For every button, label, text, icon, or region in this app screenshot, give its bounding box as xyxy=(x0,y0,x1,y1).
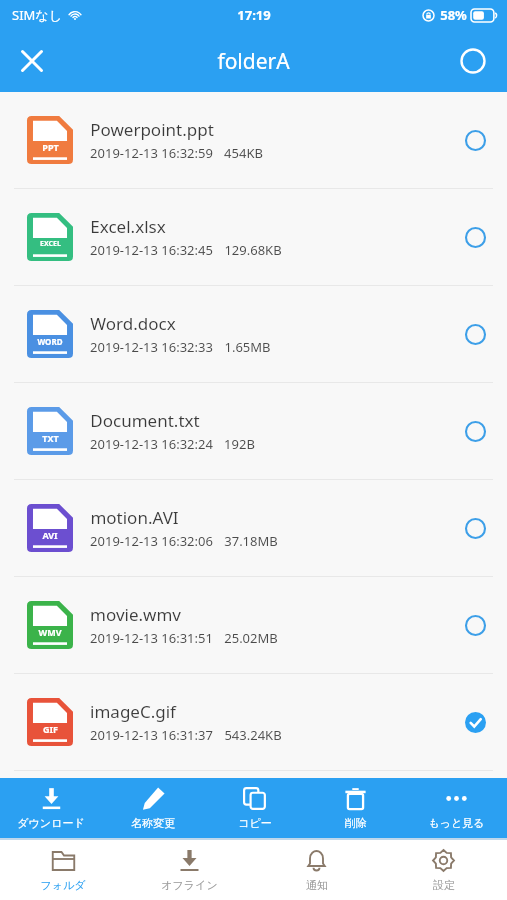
staticText: WMV xyxy=(38,626,62,638)
button[interactable]: Select all xyxy=(449,37,497,85)
staticText: WORD xyxy=(37,336,63,347)
staticText: 17:19 xyxy=(237,6,271,24)
staticText: PPT xyxy=(42,141,59,153)
button[interactable]: Close xyxy=(8,37,56,85)
staticText: Word.docx xyxy=(90,312,176,335)
button[interactable]: Select xyxy=(443,286,507,382)
staticText: SIMなし xyxy=(12,6,62,24)
button[interactable]: Select xyxy=(443,383,507,479)
staticText: ダウンロード xyxy=(17,816,85,830)
staticText: 543.24KB xyxy=(224,726,282,744)
staticText: 2019-12-13 16:31:51 xyxy=(90,629,213,647)
staticText: imageC.gif xyxy=(90,700,176,723)
button[interactable]: ダウンロード xyxy=(0,778,102,838)
staticText: 通知 xyxy=(306,878,328,892)
button[interactable]: Select xyxy=(443,577,507,673)
staticText: Powerpoint.ppt xyxy=(90,118,214,141)
staticText: 192B xyxy=(224,435,255,453)
staticText: 2019-12-13 16:32:33 xyxy=(90,338,213,356)
staticText: 名称変更 xyxy=(131,816,175,830)
button[interactable]: 削除 xyxy=(305,778,406,838)
staticText: コピー xyxy=(238,816,272,830)
staticText: TXT xyxy=(42,432,59,444)
button[interactable]: EXCEL xyxy=(0,189,507,285)
staticText: EXCEL xyxy=(40,239,61,249)
staticText: 設定 xyxy=(433,878,455,892)
button[interactable]: AVI xyxy=(0,480,507,576)
staticText: 25.02MB xyxy=(224,629,278,647)
staticText: 2019-12-13 16:32:45 xyxy=(90,241,213,259)
staticText: Document.txt xyxy=(90,409,200,432)
staticText: 58% xyxy=(440,6,467,24)
button[interactable]: もっと見る xyxy=(406,778,507,838)
staticText: 1.65MB xyxy=(224,338,271,356)
button[interactable]: WMV xyxy=(0,577,507,673)
staticText: GIF xyxy=(43,723,58,735)
staticText: 2019-12-13 16:32:59 xyxy=(90,144,213,162)
button[interactable]: オフライン xyxy=(126,840,253,900)
staticText: もっと見る xyxy=(428,816,485,830)
button[interactable]: Selected xyxy=(443,674,507,770)
staticText: オフライン xyxy=(161,878,218,892)
staticText: フォルダ xyxy=(40,878,86,892)
button[interactable]: フォルダ xyxy=(0,840,126,900)
staticText: 2019-12-13 16:32:06 xyxy=(90,532,213,550)
staticText: 37.18MB xyxy=(224,532,278,550)
staticText: 2019-12-13 16:32:24 xyxy=(90,435,213,453)
button[interactable]: コピー xyxy=(204,778,305,838)
button[interactable]: 設定 xyxy=(380,840,507,900)
staticText: 削除 xyxy=(345,816,367,830)
staticText: 129.68KB xyxy=(224,241,282,259)
staticText: Excel.xlsx xyxy=(90,215,166,238)
button[interactable]: Select xyxy=(443,480,507,576)
button[interactable]: GIF xyxy=(0,674,507,770)
staticText: movie.wmv xyxy=(90,603,181,626)
button[interactable]: 通知 xyxy=(253,840,380,900)
staticText: 2019-12-13 16:31:37 xyxy=(90,726,213,744)
staticText: folderA xyxy=(217,47,290,76)
staticText: 454KB xyxy=(224,144,263,162)
button[interactable]: TXT xyxy=(0,383,507,479)
button[interactable]: Select xyxy=(443,92,507,188)
button[interactable]: Select xyxy=(443,189,507,285)
button[interactable]: WORD xyxy=(0,286,507,382)
button[interactable]: 名称変更 xyxy=(102,778,204,838)
button[interactable]: PPT xyxy=(0,92,507,188)
staticText: motion.AVI xyxy=(90,506,179,529)
staticText: AVI xyxy=(42,529,58,541)
